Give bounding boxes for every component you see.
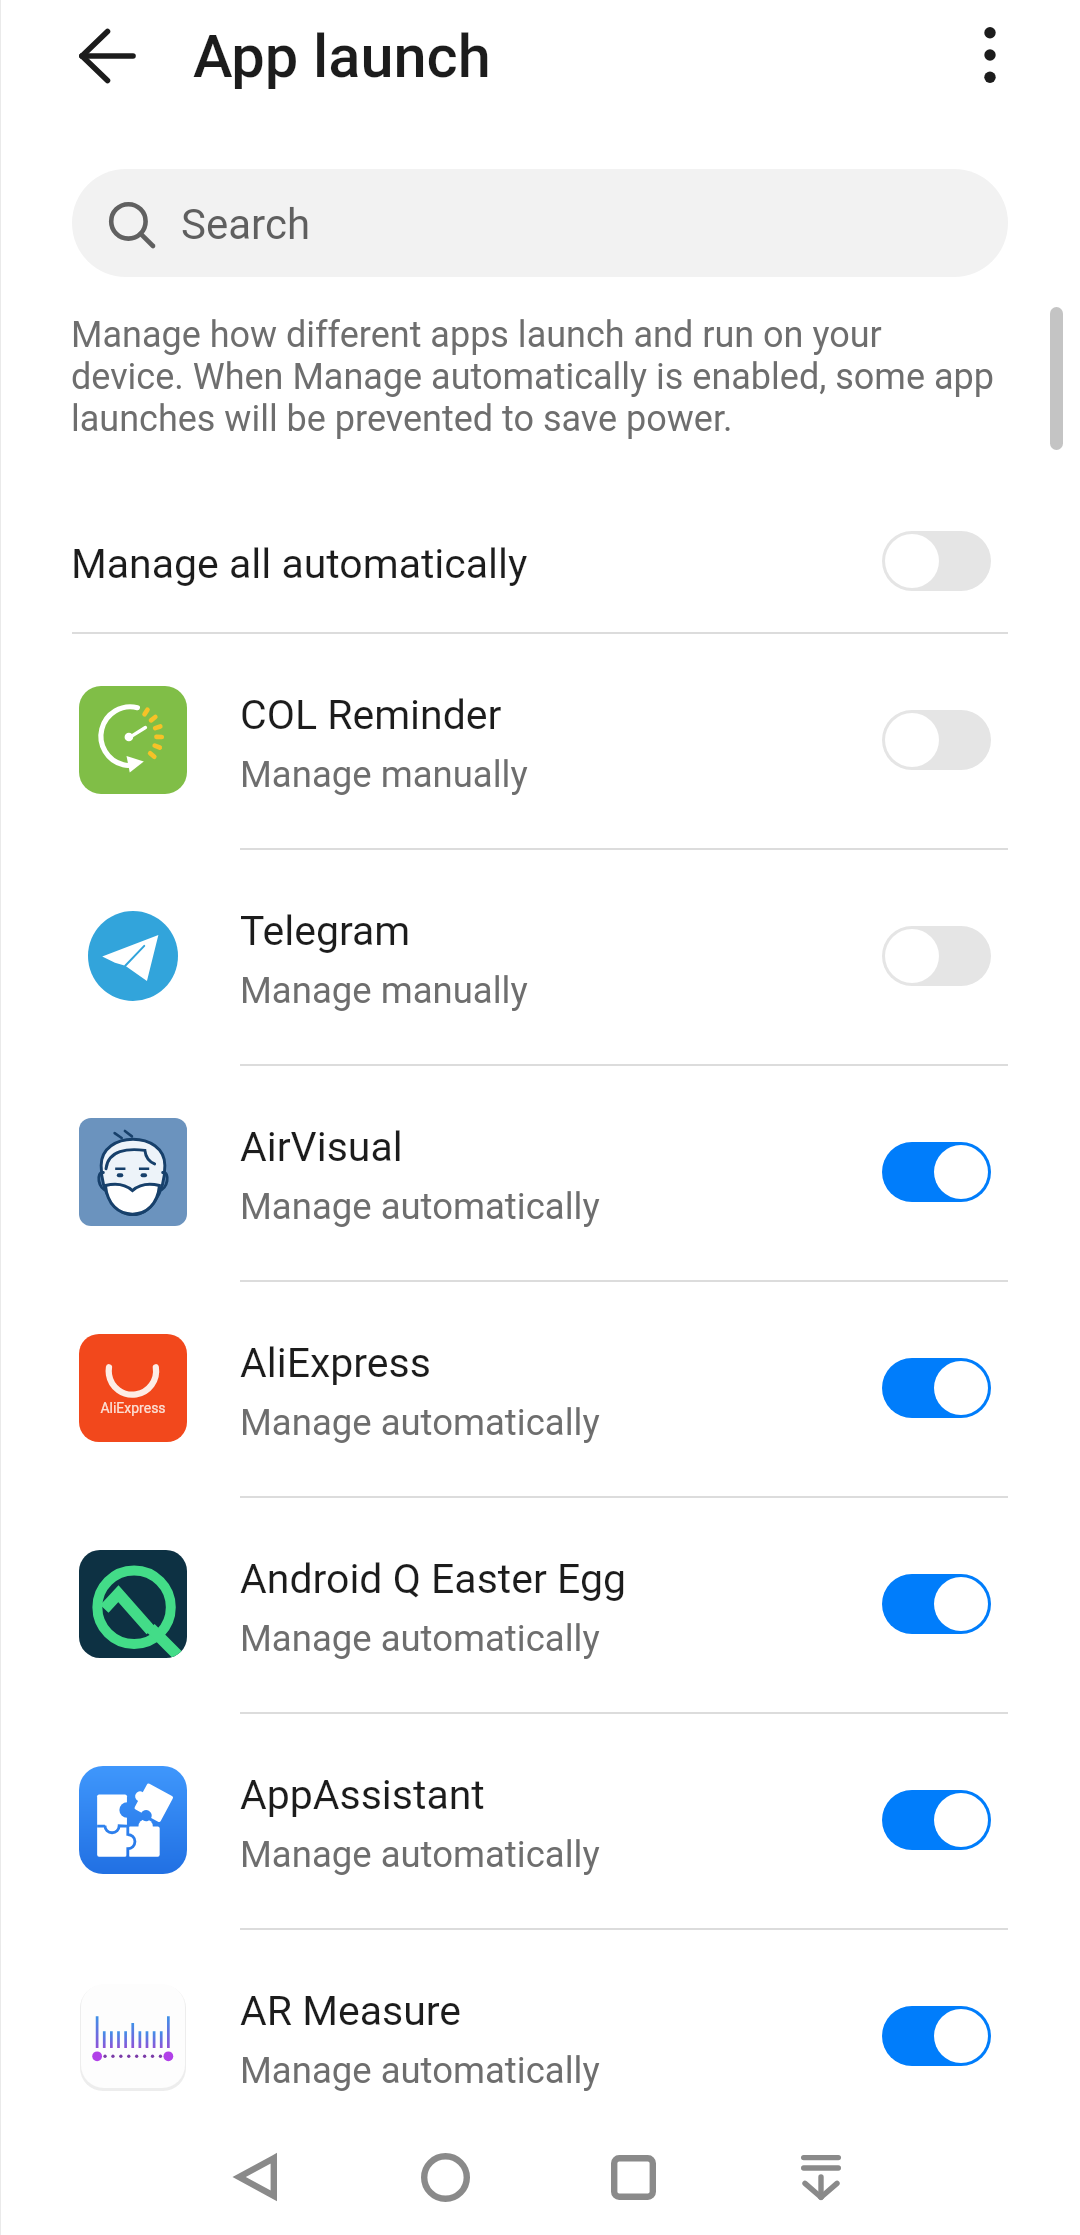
button[interactable]: Back: [194, 2118, 318, 2235]
staticText: Manage how different apps launch and run…: [71, 314, 1001, 440]
staticText: Manage automatically: [240, 1185, 600, 1228]
staticText: Manage automatically: [240, 1401, 600, 1444]
button[interactable]: Enabled: [882, 1574, 991, 1634]
button[interactable]: Recents: [571, 2118, 695, 2235]
button[interactable]: Enabled: [882, 2006, 991, 2066]
staticText: Manage manually: [240, 753, 528, 796]
button[interactable]: AR Measure: [0, 1928, 1080, 2144]
staticText: Android Q Easter Egg: [240, 1555, 626, 1603]
button[interactable]: Enabled: [882, 1142, 991, 1202]
button[interactable]: Enabled: [882, 1358, 991, 1418]
staticText: AppAssistant: [240, 1771, 485, 1819]
button[interactable]: Disabled: [882, 531, 991, 591]
button[interactable]: Disabled: [882, 710, 991, 770]
staticText: Telegram: [240, 907, 411, 955]
staticText: Manage manually: [240, 969, 528, 1012]
staticText: AirVisual: [240, 1123, 403, 1171]
staticText: Manage automatically: [240, 1617, 600, 1660]
button[interactable]: Hide keyboard: [759, 2118, 883, 2235]
button[interactable]: COL Reminder: [0, 632, 1080, 848]
button[interactable]: Android Q Easter Egg: [0, 1496, 1080, 1712]
button[interactable]: Search: [72, 169, 1008, 277]
button[interactable]: Home: [383, 2118, 507, 2235]
button[interactable]: Manage all automatically: [0, 490, 1080, 632]
button[interactable]: AirVisual: [0, 1064, 1080, 1280]
button[interactable]: AliExpress: [0, 1280, 1080, 1496]
button[interactable]: Back: [46, 12, 166, 100]
staticText: COL Reminder: [240, 691, 502, 739]
button[interactable]: AppAssistant: [0, 1712, 1080, 1928]
button[interactable]: Disabled: [882, 926, 991, 986]
button[interactable]: Telegram: [0, 848, 1080, 1064]
staticText: AliExpress: [100, 1400, 166, 1416]
staticText: Manage automatically: [240, 2049, 600, 2092]
staticText: Search: [181, 200, 311, 249]
button[interactable]: More options: [945, 5, 1035, 105]
staticText: Manage automatically: [240, 1833, 600, 1876]
staticText: AliExpress: [240, 1339, 431, 1387]
button[interactable]: Enabled: [882, 1790, 991, 1850]
staticText: AR Measure: [240, 1987, 462, 2035]
staticText: Manage all automatically: [71, 540, 528, 588]
staticText: App launch: [193, 22, 491, 92]
